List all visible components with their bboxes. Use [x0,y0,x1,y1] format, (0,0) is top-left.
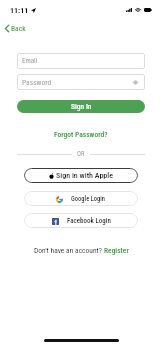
button[interactable]: Email [17,53,145,69]
button[interactable]: Register [104,246,129,255]
staticText: Password [22,78,52,87]
staticText: Google Login [71,195,106,203]
staticText: 11:11 [10,6,29,15]
button[interactable]: Sign In [17,100,145,113]
staticText: Forgot Password? [54,130,108,139]
button[interactable]: Password [17,74,145,90]
staticText: Sign In [71,102,92,111]
button[interactable]: Back [0,22,32,35]
button[interactable]: Sign in with Apple [24,168,138,183]
staticText: Email [22,57,38,65]
staticText: Register [104,246,129,255]
staticText: OR [77,150,85,158]
staticText: Sign in with Apple [56,171,114,180]
staticText: Don't have an account? [34,246,102,255]
button[interactable]: Show password [133,80,138,85]
staticText: Back [11,24,26,33]
button[interactable]: Facebook Login [24,213,138,228]
staticText: Facebook Login [67,217,111,225]
button[interactable]: Google Login [24,191,138,206]
button[interactable]: Forgot Password? [51,128,111,141]
